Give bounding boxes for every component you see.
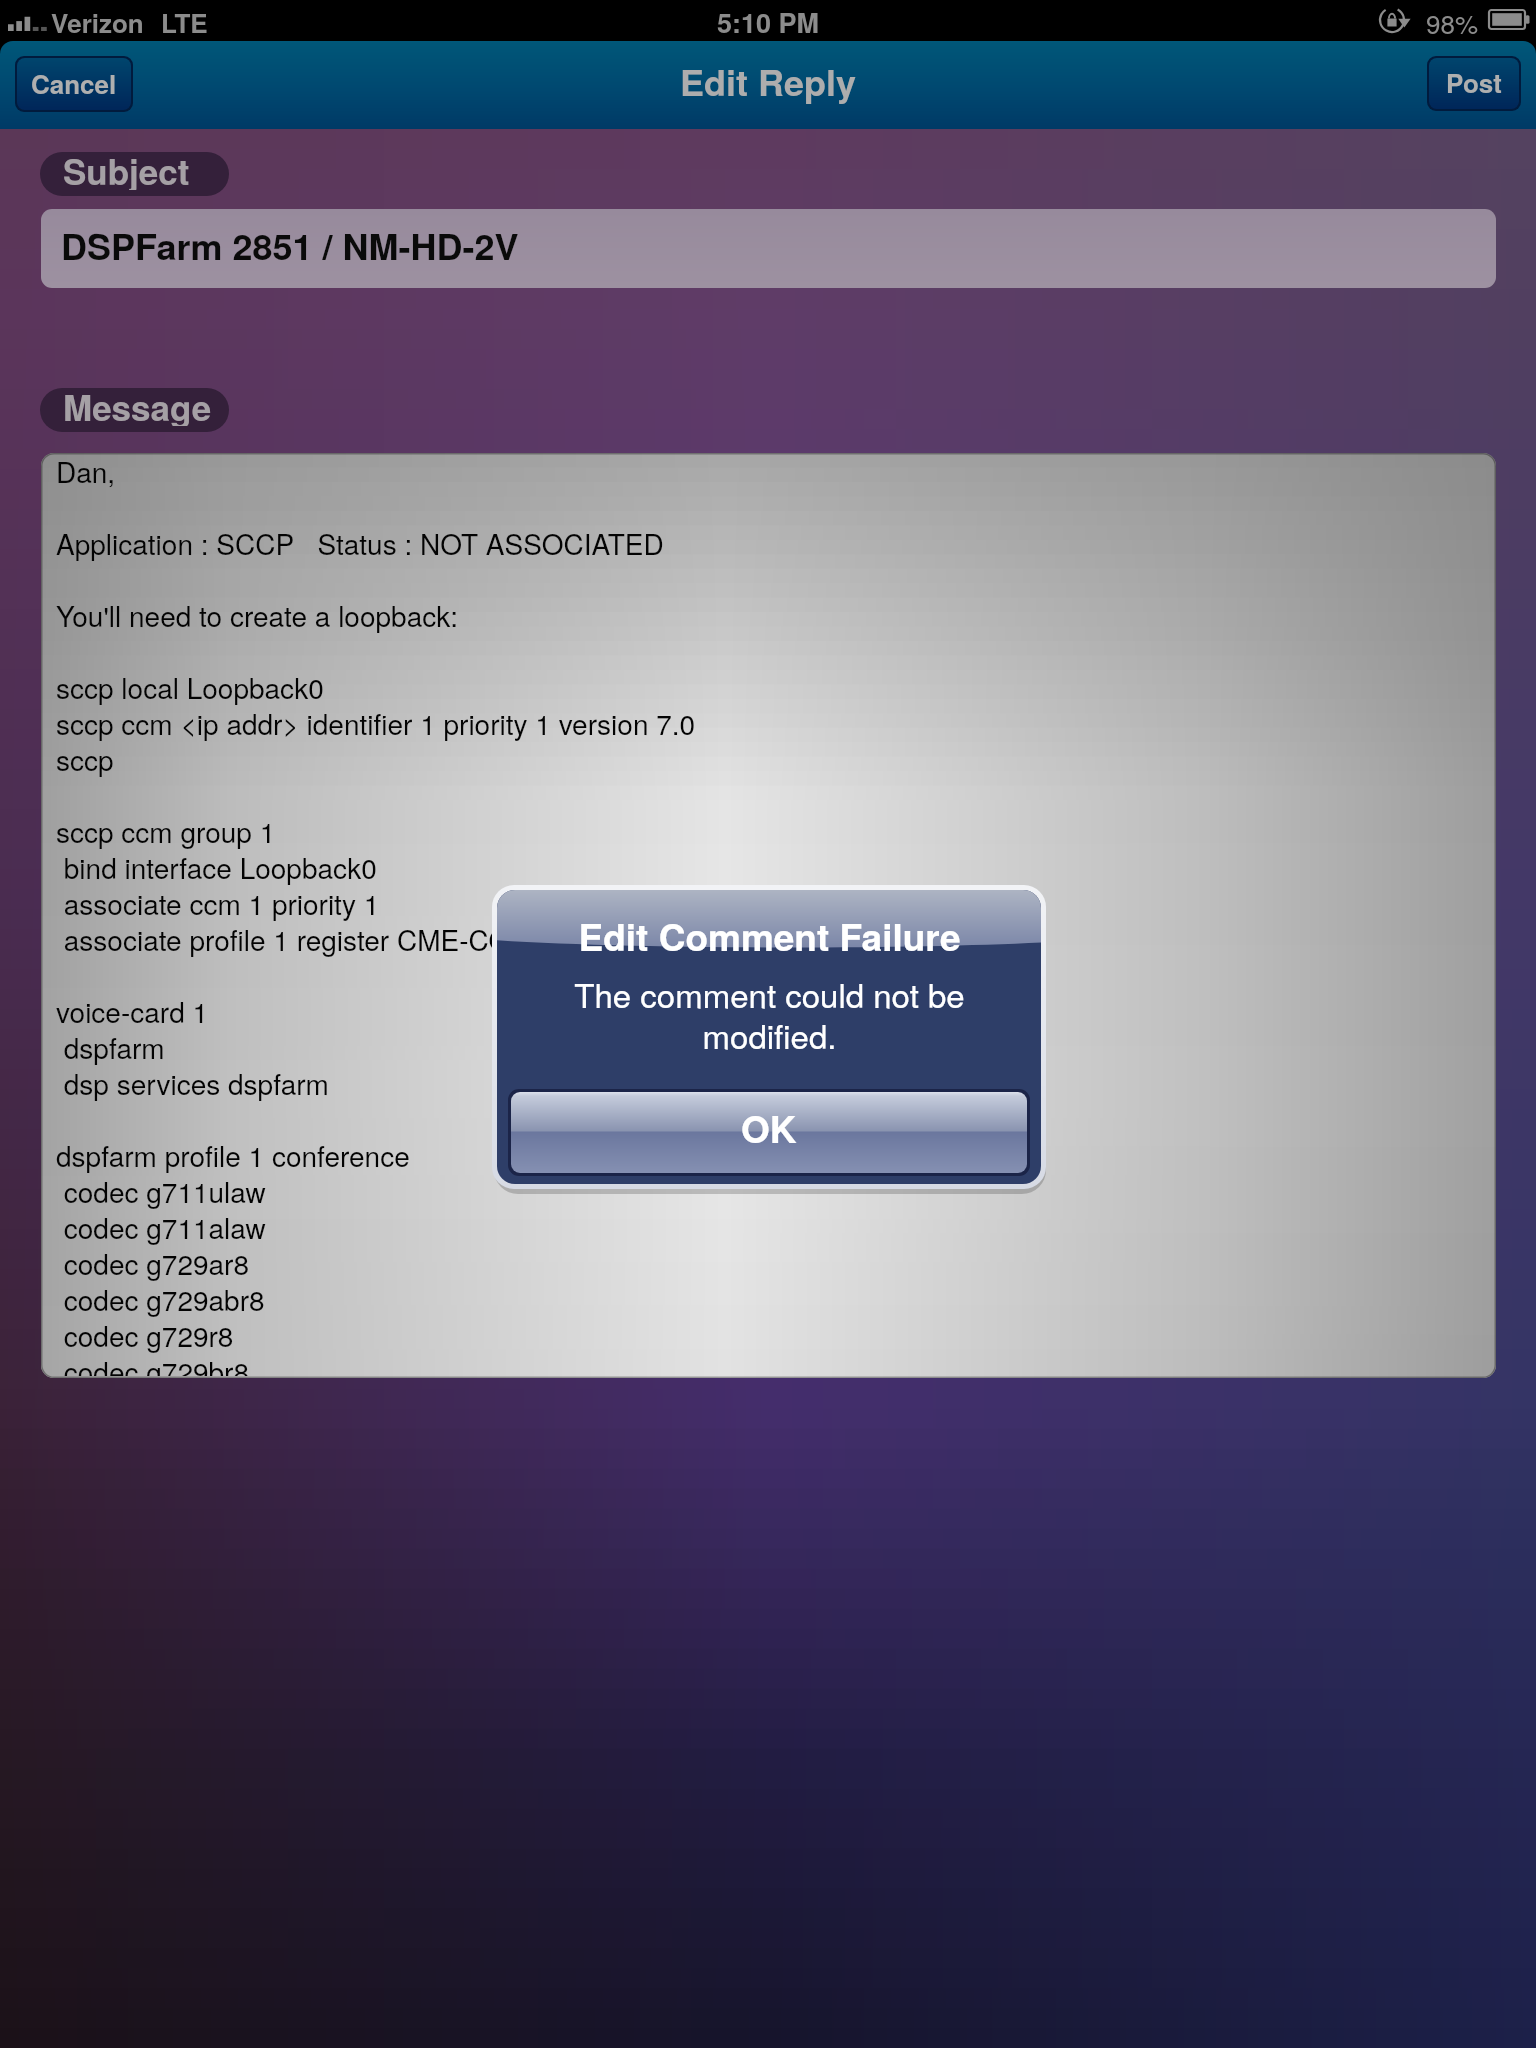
staticText: Post [1446,64,1502,101]
other: Battery 98 percent [1489,10,1530,30]
staticText: Verizon [51,4,144,41]
staticText: Cancel [31,65,117,102]
staticText: Dan, Application : SCCP Status : NOT ASS… [56,453,696,1376]
staticText: DSPFarm 2851 / NM-HD-2V [61,219,519,271]
button[interactable]: OK [511,1092,1027,1173]
staticText: The comment could not be modified. [574,970,965,1058]
staticText: 98% [1426,4,1479,41]
staticText: OK [741,1101,797,1154]
button[interactable]: Message [40,388,229,432]
button[interactable]: DSPFarm 2851 / NM-HD-2V [41,209,1496,288]
button[interactable]: Cancel [17,58,131,110]
other: Rotation lock [1378,5,1416,35]
staticText: Edit Comment Failure [578,909,961,962]
staticText: Message [63,388,212,426]
button[interactable]: Post [1429,58,1519,109]
staticText: LTE [161,4,208,41]
staticText: 5:10 PM [717,3,820,42]
button[interactable]: Subject [40,152,229,196]
staticText: Subject [63,152,190,190]
staticText: Edit Reply [680,55,857,107]
